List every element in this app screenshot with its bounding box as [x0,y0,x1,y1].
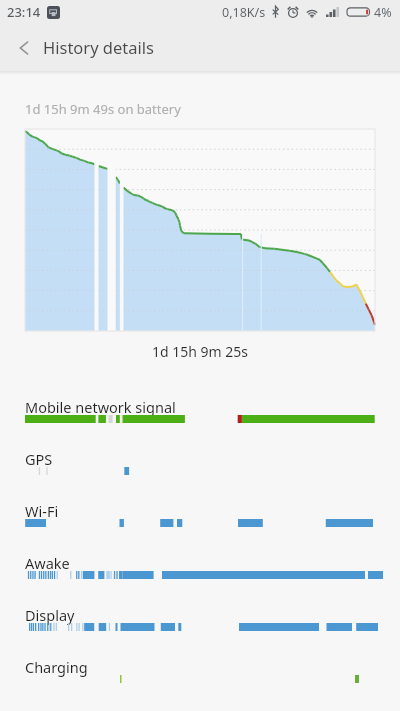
staticText: Wi-Fi [25,501,59,521]
staticText: 0,18K/s [222,4,266,21]
button[interactable]: Back [0,24,44,71]
staticText: GPS [25,449,53,469]
staticText: 4% [374,4,392,21]
staticText: 1d 15h 9m 25s [0,342,400,361]
button[interactable]: Charging [0,657,400,709]
staticText: 23:14 [7,3,41,21]
staticText: Charging [25,657,88,677]
button[interactable]: Mobile network signal [0,397,400,449]
button[interactable]: Display [0,605,400,657]
button[interactable]: Wi-Fi [0,501,400,553]
button[interactable]: GPS [0,449,400,501]
staticText: 1d 15h 9m 49s on battery [25,100,181,118]
staticText: History details [43,36,154,58]
staticText: Mobile network signal [25,397,176,417]
staticText: Display [25,605,75,625]
button[interactable]: Awake [0,553,400,605]
staticText: Awake [25,553,70,573]
